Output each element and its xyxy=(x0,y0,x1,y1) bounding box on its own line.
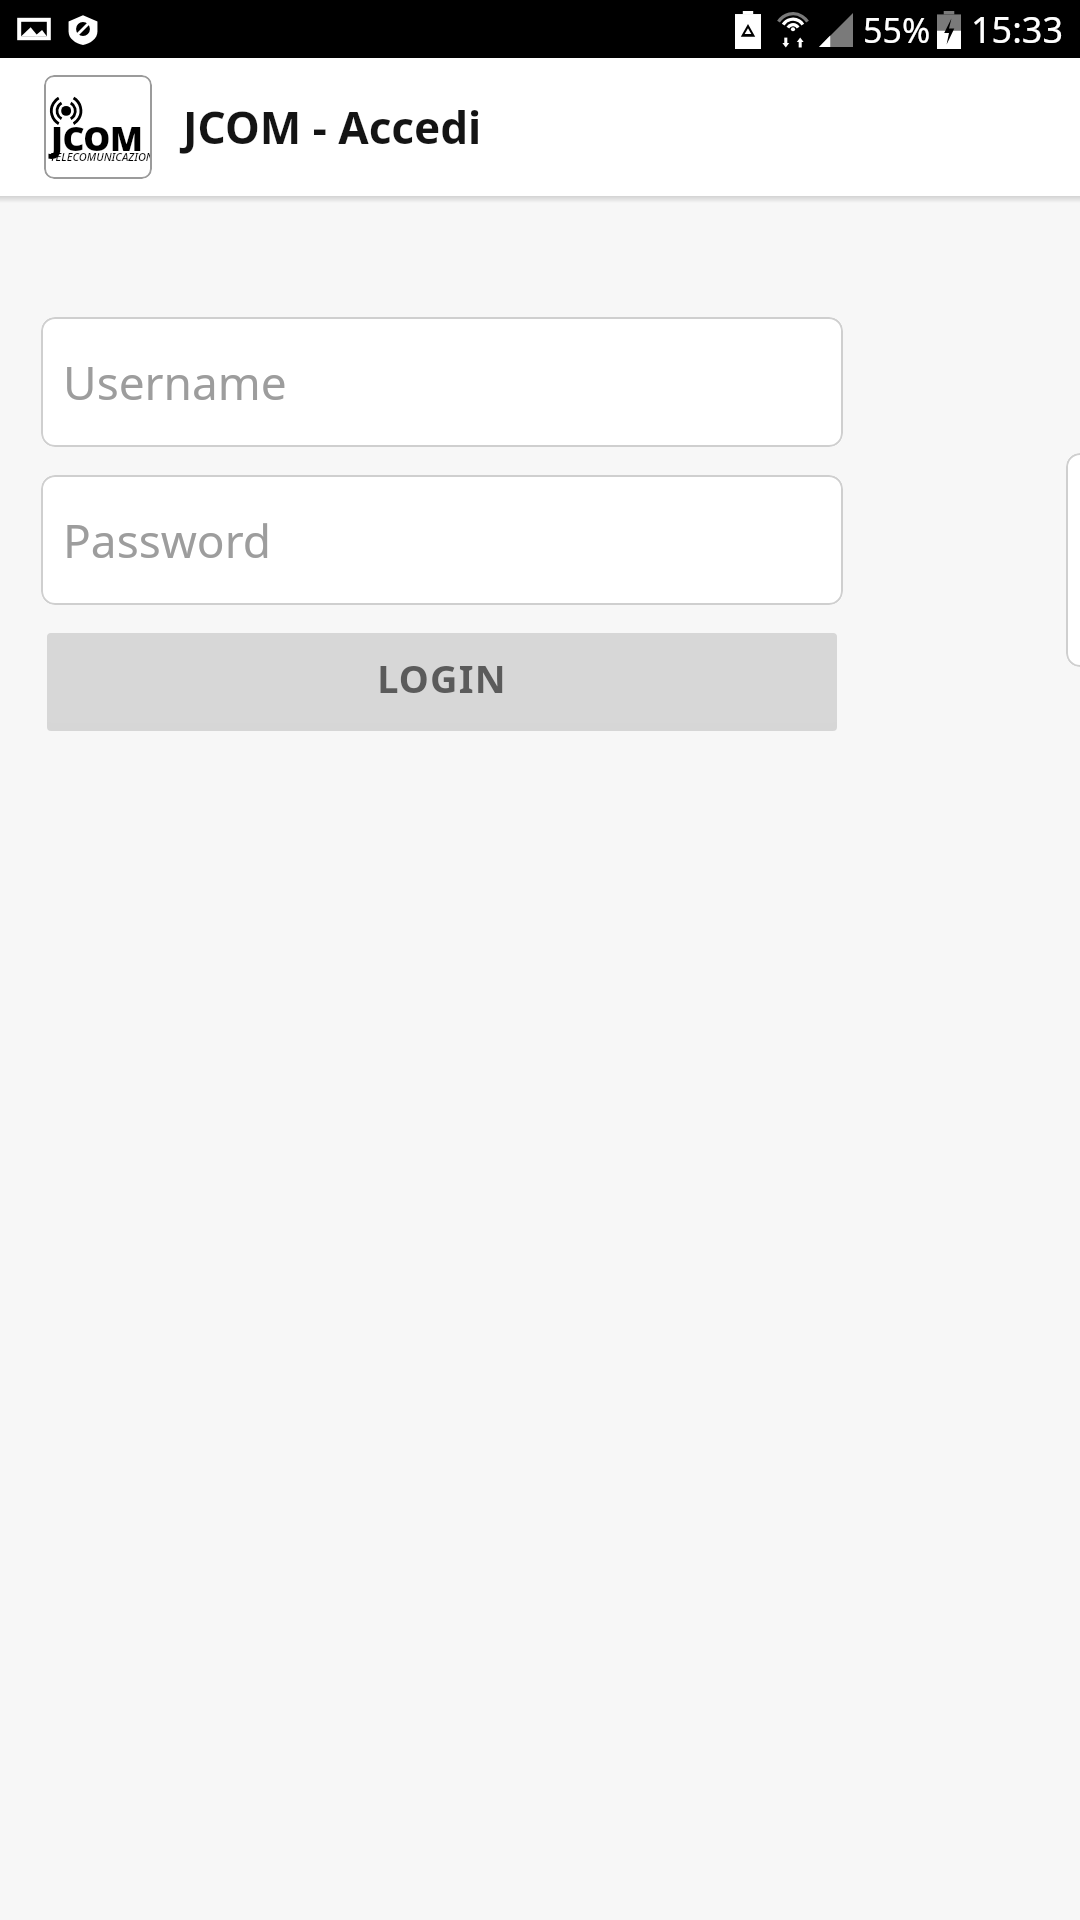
button[interactable]: LOGIN xyxy=(47,633,837,723)
staticText: 15:33 xyxy=(971,5,1064,54)
staticText: Username xyxy=(63,351,287,414)
button[interactable]: Password xyxy=(41,475,843,605)
staticText: JCOM xyxy=(51,115,143,161)
staticText: LOGIN xyxy=(377,652,507,704)
staticText: JCOM - Accedi xyxy=(183,97,482,157)
staticText: TELECOMUNICAZIONI xyxy=(50,149,152,164)
button[interactable]: Username xyxy=(41,317,843,447)
staticText: Password xyxy=(63,509,272,572)
staticText: 55% xyxy=(863,7,931,53)
